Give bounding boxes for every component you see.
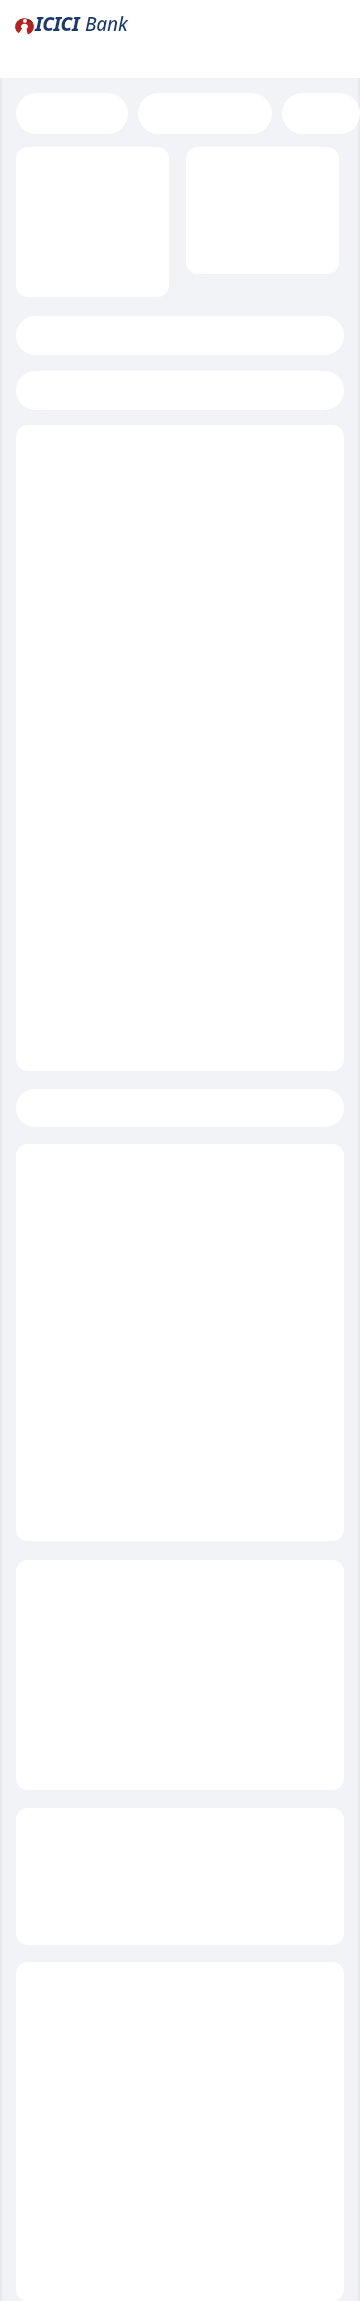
button[interactable]: ICICI Bank home	[15, 11, 128, 37]
button[interactable]: Filter chip one	[16, 93, 128, 134]
staticText: Bank	[85, 11, 128, 37]
button[interactable]: Filter chip two	[138, 93, 272, 134]
staticText: ICICI	[35, 11, 80, 37]
button[interactable]: Filter chip three	[282, 93, 360, 134]
